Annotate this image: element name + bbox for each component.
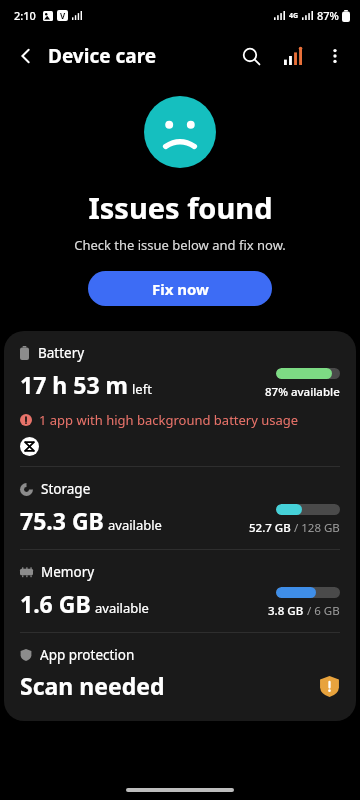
staticText: 87%: [317, 8, 339, 23]
staticText: 87% available: [265, 384, 340, 400]
staticText: left: [132, 380, 152, 398]
staticText: 17 h 53 m: [20, 369, 128, 400]
button[interactable]: More options: [314, 35, 356, 77]
button[interactable]: App protection: [4, 633, 356, 721]
staticText: Scan needed: [20, 670, 165, 701]
button[interactable]: Fix now: [88, 271, 272, 306]
staticText: Battery: [38, 344, 85, 362]
button[interactable]: Memory: [4, 550, 356, 632]
staticText: 4G: [289, 11, 299, 21]
staticText: Issues found: [88, 188, 273, 227]
staticText: App protection: [40, 646, 135, 664]
staticText: 2:10: [14, 8, 36, 23]
button[interactable]: Battery: [4, 331, 356, 466]
staticText: Storage: [41, 480, 91, 498]
button[interactable]: Search: [230, 35, 272, 77]
staticText: 1.6 GB: [20, 588, 91, 619]
button[interactable]: Usage: [272, 35, 314, 77]
staticText: Memory: [41, 563, 95, 581]
staticText: V: [60, 10, 66, 21]
button[interactable]: App with high battery usage: [20, 437, 39, 456]
staticText: 1 app with high background battery usage: [39, 411, 299, 429]
staticText: Check the issue below and fix now.: [74, 236, 286, 254]
staticText: / 128 GB: [291, 520, 340, 536]
staticText: 3.8 GB: [268, 603, 304, 619]
staticText: 75.3 GB: [20, 505, 104, 536]
staticText: Fix now: [152, 279, 209, 299]
staticText: / 6 GB: [304, 603, 340, 619]
staticText: available: [108, 516, 162, 534]
staticText: 52.7 GB: [249, 520, 291, 536]
button[interactable]: Back: [4, 34, 48, 78]
button[interactable]: Storage: [4, 467, 356, 549]
staticText: available: [95, 599, 149, 617]
staticText: Device care: [48, 43, 157, 69]
